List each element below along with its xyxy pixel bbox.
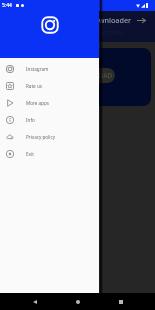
staticText: Privacy policy: [26, 134, 56, 140]
staticText: 5:44: [2, 2, 12, 9]
staticText: 5:44: [2, 2, 12, 9]
button[interactable]: Recent apps: [112, 293, 129, 310]
staticText: DOWNLOAD: [18, 29, 51, 36]
button[interactable]: Rate us: [0, 77, 99, 94]
button[interactable]: Instagram: [0, 60, 99, 77]
staticText: Info: [26, 117, 35, 123]
button[interactable]: DOWNLOAD: [0, 26, 68, 39]
staticText: Video Downloader: [68, 15, 132, 25]
staticText: Exit: [26, 151, 34, 157]
staticText: Instagram: [26, 66, 49, 72]
button[interactable]: More apps: [0, 94, 99, 111]
staticText: More apps: [26, 100, 49, 106]
staticText: Rate us: [26, 83, 42, 89]
button[interactable]: Back: [26, 293, 43, 310]
button[interactable]: Info: [0, 111, 99, 128]
button[interactable]: DOWNLOAD: [72, 68, 115, 83]
button[interactable]: HISTORY: [68, 26, 155, 39]
staticText: DOWNLOAD: [74, 71, 113, 80]
button[interactable]: Share: [134, 13, 148, 27]
button[interactable]: Privacy policy: [0, 128, 99, 145]
button[interactable]: Exit: [0, 145, 99, 162]
button[interactable]: Home: [69, 293, 86, 310]
staticText: HISTORY: [100, 29, 124, 36]
